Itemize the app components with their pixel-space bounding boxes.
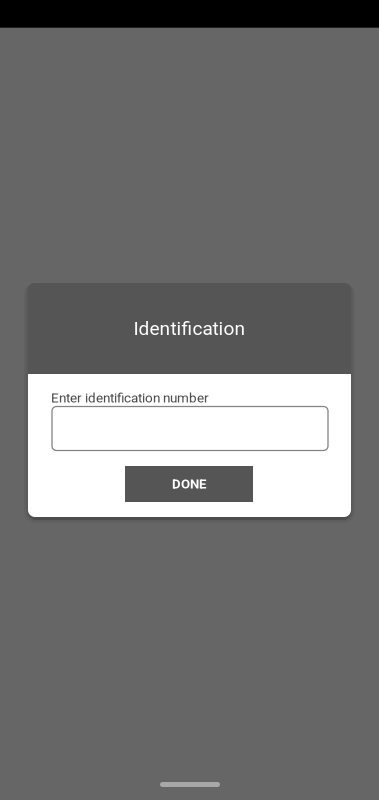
button[interactable]: Identification number text field bbox=[52, 406, 328, 450]
staticText: DONE bbox=[172, 476, 206, 492]
button[interactable]: DONE bbox=[125, 466, 253, 502]
staticText: Enter identification number bbox=[51, 390, 209, 406]
staticText: Identification bbox=[133, 317, 245, 340]
